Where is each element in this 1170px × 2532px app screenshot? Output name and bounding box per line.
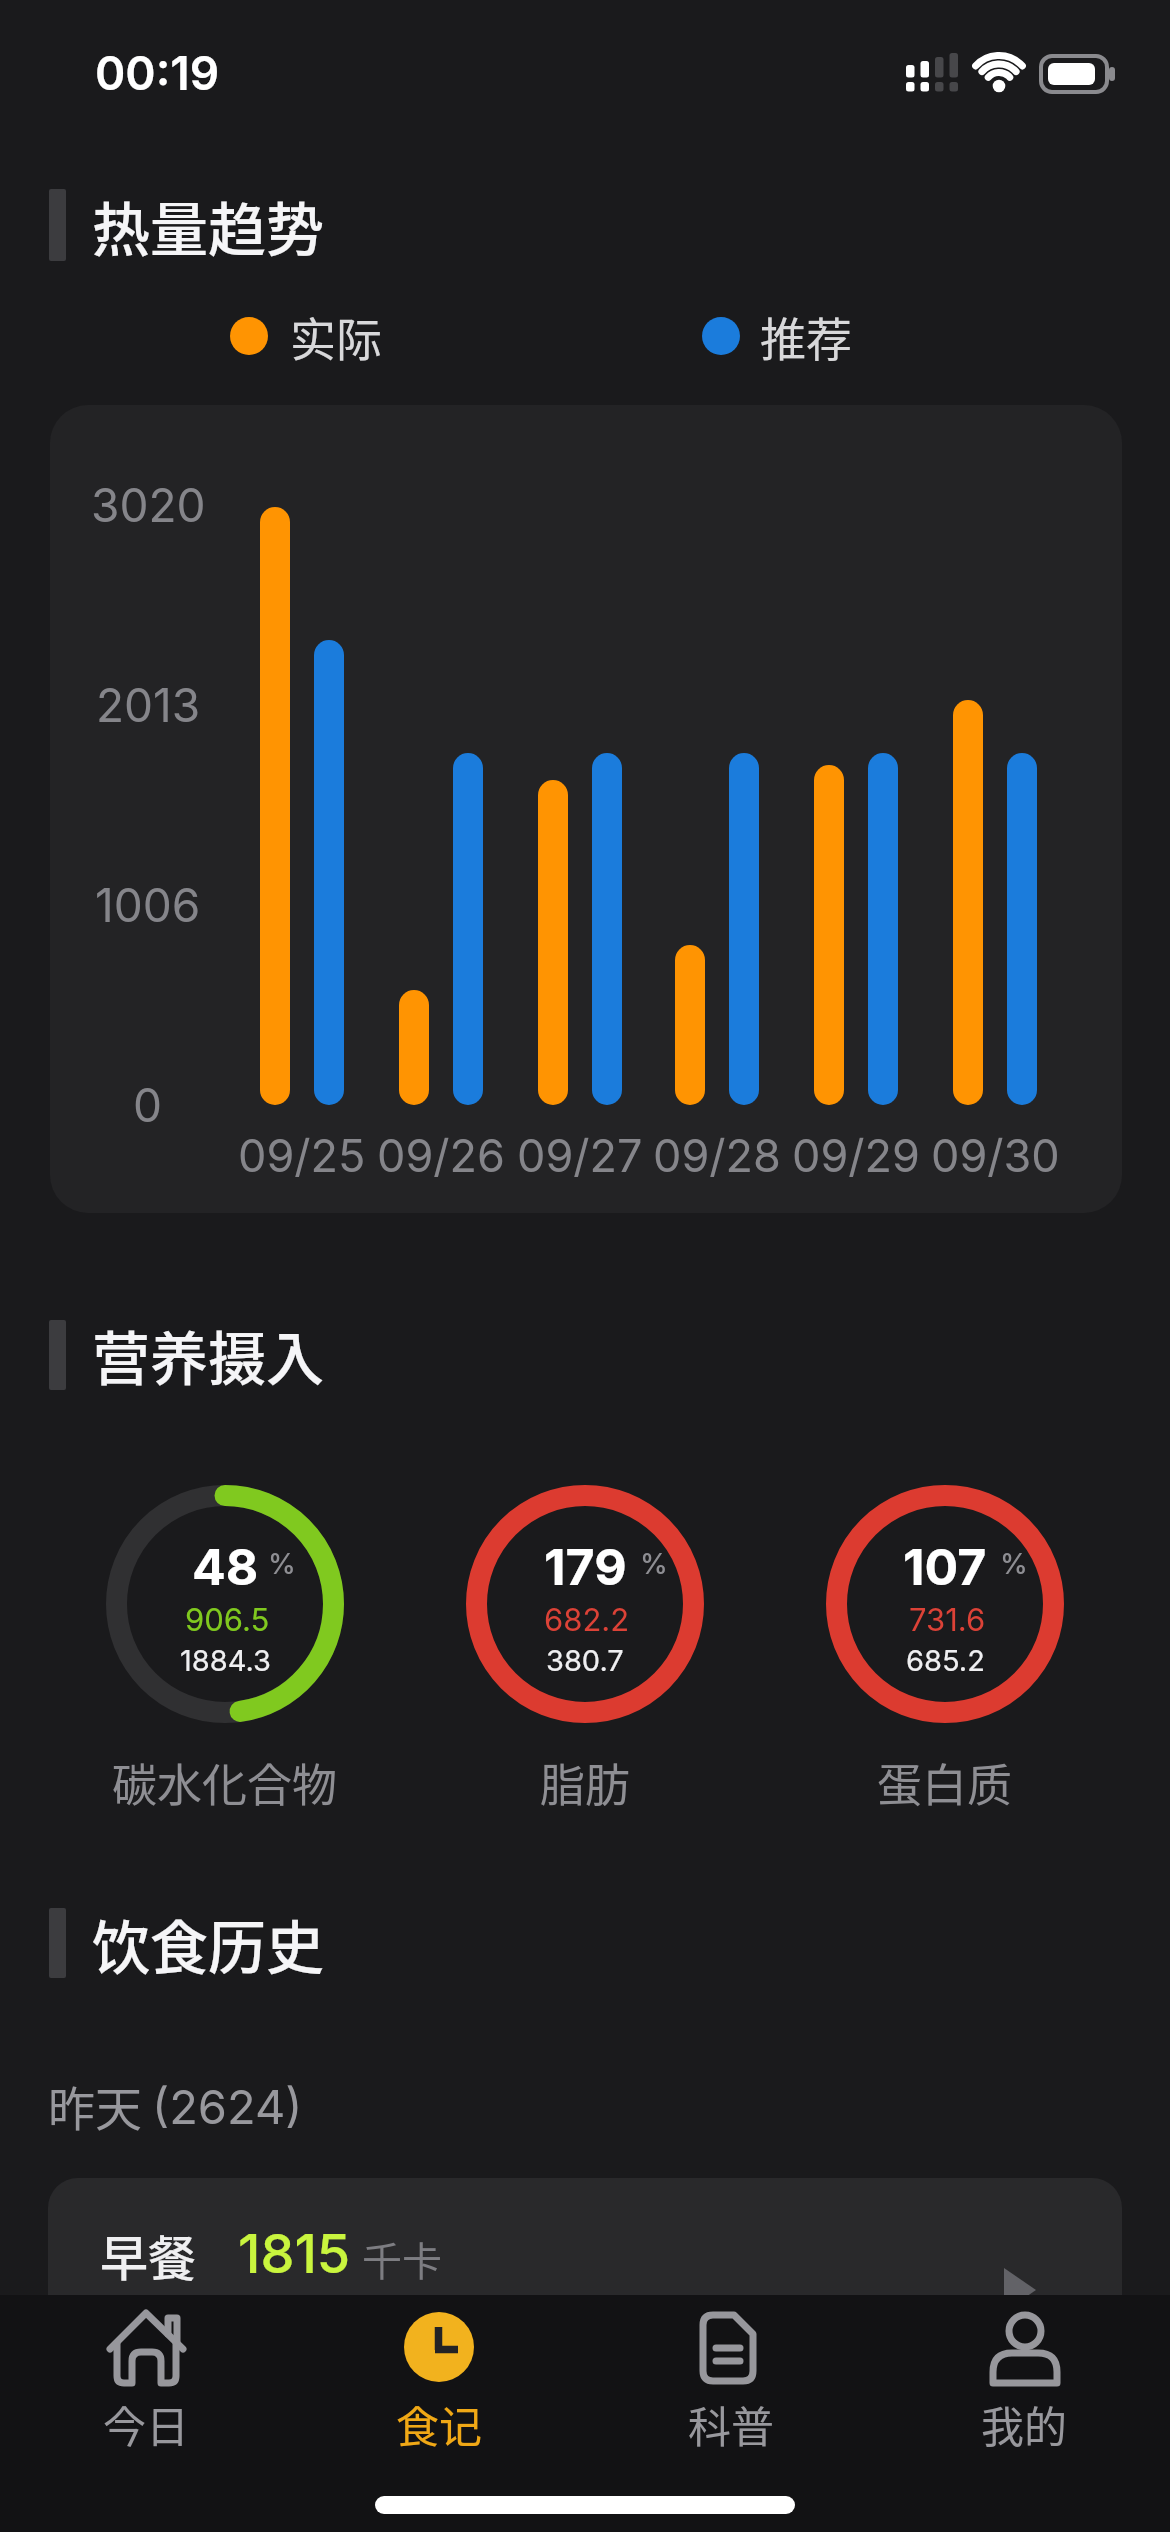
staticText: 0 [133,1077,163,1133]
staticText: 昨天 [48,2071,142,2139]
staticText: 脂肪 [540,1750,631,1815]
staticText: 107 [903,1537,987,1597]
staticText: 饮食历史 [92,1902,325,1986]
staticText: % [1000,1547,1028,1581]
staticText: 3020 [91,477,206,533]
staticText: 09/28 [653,1128,781,1182]
button[interactable] [293,2295,585,2495]
staticText: 179 [544,1537,627,1597]
button[interactable] [0,2295,292,2495]
staticText: 科普 [688,2393,774,2455]
staticText: 营养摄入 [92,1313,325,1397]
staticText: 今日 [103,2393,189,2455]
staticText: 早餐 [100,2220,197,2290]
staticText: 碳水化合物 [112,1750,338,1815]
staticText: 我的 [981,2393,1067,2455]
staticText: 682.2 [544,1601,630,1639]
staticText: 推荐 [760,303,852,370]
staticText: 食记 [396,2393,482,2455]
staticText: 09/30 [931,1128,1060,1182]
staticText: 热量趋势 [92,184,325,268]
staticText: 380.7 [546,1643,624,1678]
staticText: 685.2 [906,1643,985,1678]
staticText: 1006 [95,877,201,933]
staticText: 蛋白质 [877,1750,1013,1815]
button[interactable] [48,2178,1122,2438]
staticText: 906.5 [185,1601,270,1639]
button[interactable] [585,2295,877,2495]
staticText: % [268,1547,296,1581]
staticText: 09/29 [792,1128,920,1182]
staticText: 千卡 [362,2230,442,2288]
staticText: % [640,1547,668,1581]
staticText: 1884.3 [180,1643,271,1678]
staticText: 09/26 [377,1128,505,1182]
staticText: 09/27 [517,1128,643,1182]
staticText: 2013 [96,677,201,733]
staticText: (2624) [152,2078,303,2135]
staticText: 1815 [238,2221,351,2286]
staticText: 00:19 [95,45,220,101]
staticText: 48 [192,1537,259,1597]
staticText: 731.6 [909,1601,986,1639]
button[interactable] [878,2295,1170,2495]
staticText: 实际 [290,303,382,370]
staticText: 09/25 [238,1128,366,1182]
